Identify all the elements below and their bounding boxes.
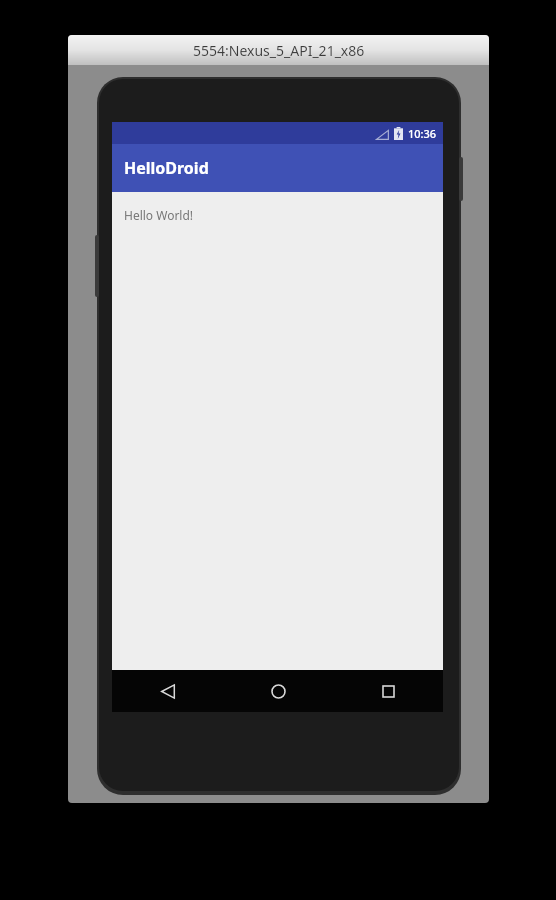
- staticText: HelloDroid: [124, 157, 209, 179]
- staticText: 5554:Nexus_5_API_21_x86: [193, 41, 365, 60]
- staticText: 10:36: [408, 126, 437, 141]
- button[interactable]: Home: [223, 670, 333, 712]
- button[interactable]: Back: [112, 670, 223, 712]
- button[interactable]: HelloDroid: [112, 144, 443, 192]
- staticText: Hello World!: [124, 207, 194, 223]
- button[interactable]: Recent apps: [333, 670, 443, 712]
